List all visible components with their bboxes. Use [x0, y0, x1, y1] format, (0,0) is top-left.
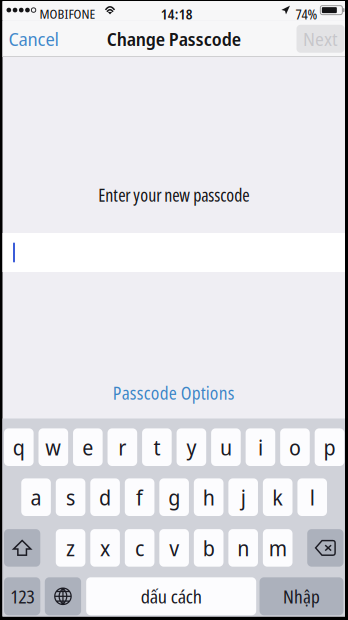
button[interactable]: x [90, 529, 120, 567]
staticText: k [272, 483, 283, 512]
button[interactable]: v [159, 529, 189, 567]
staticText: z [66, 533, 75, 562]
staticText: c [135, 533, 144, 562]
staticText: v [169, 533, 179, 562]
button[interactable]: g [159, 478, 189, 516]
staticText: dấu cách [141, 584, 202, 609]
staticText: j [241, 483, 246, 512]
staticText: b [203, 533, 215, 562]
button[interactable]: w [38, 428, 68, 466]
button[interactable]: k [263, 478, 292, 516]
staticText: 123 [10, 584, 34, 609]
staticText: e [82, 433, 93, 462]
staticText: w [45, 433, 61, 462]
button[interactable]: c [125, 529, 154, 567]
staticText: 14:18 [161, 4, 193, 24]
button[interactable]: d [90, 478, 120, 516]
staticText: h [203, 483, 215, 512]
button[interactable]: z [56, 529, 85, 567]
staticText: Change Passcode [107, 26, 241, 51]
button[interactable]: dấu cách [86, 577, 256, 615]
staticText: p [323, 433, 335, 462]
button[interactable]: f [125, 478, 154, 516]
button[interactable]: p [315, 428, 344, 466]
button[interactable]: e [73, 428, 103, 466]
button[interactable]: Numbers [4, 577, 40, 615]
staticText: t [153, 433, 160, 462]
button[interactable]: Delete [307, 529, 343, 567]
staticText: Nhập [283, 584, 320, 609]
button[interactable]: r [108, 428, 137, 466]
button[interactable]: o [280, 428, 310, 466]
staticText: o [289, 433, 301, 462]
button[interactable]: s [56, 478, 85, 516]
button[interactable]: u [211, 428, 241, 466]
button[interactable]: n [228, 529, 258, 567]
staticText: 74% [295, 4, 317, 24]
staticText: Enter your new passcode [98, 183, 249, 207]
button[interactable]: Shift [4, 529, 40, 567]
staticText: Cancel [8, 26, 58, 51]
button[interactable]: j [228, 478, 258, 516]
button[interactable]: i [246, 428, 275, 466]
button[interactable]: b [194, 529, 223, 567]
button[interactable]: Next [296, 20, 344, 57]
button[interactable]: q [4, 428, 34, 466]
button[interactable]: y [177, 428, 206, 466]
button[interactable]: Next keyboard [45, 577, 81, 615]
staticText: MOBIFONE [39, 4, 95, 23]
staticText: f [136, 483, 143, 512]
button[interactable]: a [21, 478, 51, 516]
button[interactable]: l [297, 478, 327, 516]
staticText: r [118, 433, 126, 462]
staticText: y [186, 433, 196, 462]
staticText: Next [303, 26, 338, 51]
staticText: g [168, 483, 180, 512]
button[interactable]: Nhập [259, 577, 343, 615]
staticText: u [220, 433, 232, 462]
staticText: i [258, 433, 263, 462]
button[interactable]: Cancel [2, 20, 76, 57]
button[interactable]: m [263, 529, 292, 567]
staticText: s [66, 483, 75, 512]
button[interactable]: t [142, 428, 172, 466]
button[interactable]: h [194, 478, 223, 516]
staticText: m [269, 533, 287, 562]
staticText: a [31, 483, 42, 512]
staticText: n [237, 533, 249, 562]
staticText: d [99, 483, 111, 512]
staticText: Passcode Options [113, 381, 235, 405]
staticText: q [13, 433, 25, 462]
staticText: x [100, 533, 110, 562]
staticText: l [310, 483, 315, 512]
button[interactable]: Passcode Options [99, 381, 249, 405]
